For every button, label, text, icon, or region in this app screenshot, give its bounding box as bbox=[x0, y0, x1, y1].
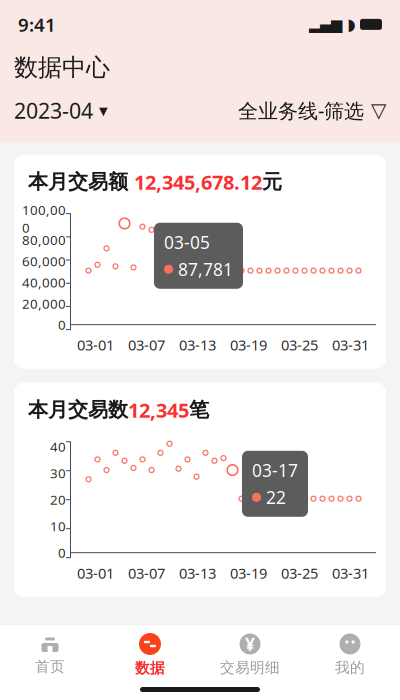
button[interactable]: 我的 bbox=[300, 625, 400, 682]
staticText: 03-31 bbox=[332, 335, 369, 355]
staticText: 笔 bbox=[189, 398, 209, 422]
staticText: 03-07 bbox=[128, 563, 165, 583]
staticText: 03-19 bbox=[230, 563, 267, 583]
staticText: 60,000 bbox=[22, 252, 66, 270]
staticText: 30 bbox=[50, 464, 66, 482]
staticText: 03-17 bbox=[252, 459, 298, 482]
staticText: ▾ bbox=[99, 101, 108, 120]
staticText: ¥ bbox=[245, 632, 255, 655]
staticText: 10 bbox=[50, 517, 66, 535]
staticText: 0 bbox=[58, 316, 66, 333]
staticText: 03-13 bbox=[179, 563, 216, 583]
staticText: 40,000 bbox=[22, 273, 66, 291]
staticText: 03-13 bbox=[179, 335, 216, 355]
staticText: 20 bbox=[50, 491, 66, 508]
staticText: 87,781 bbox=[178, 258, 233, 281]
button[interactable]: ¥ bbox=[200, 625, 300, 682]
button[interactable]: 2023-04 bbox=[14, 92, 108, 129]
staticText: 03-01 bbox=[77, 563, 114, 583]
staticText: ▽ bbox=[371, 99, 386, 122]
staticText: 100,000 bbox=[22, 201, 66, 236]
staticText: 03-25 bbox=[281, 335, 318, 355]
staticText: 数据 bbox=[135, 659, 165, 677]
button[interactable]: 数据 bbox=[100, 625, 200, 683]
staticText: 我的 bbox=[335, 658, 365, 676]
staticText: 全业务线-筛选 bbox=[238, 97, 364, 124]
staticText: 40 bbox=[50, 438, 66, 455]
staticText: 元 bbox=[262, 170, 282, 194]
button[interactable]: 全业务线-筛选 bbox=[238, 93, 386, 128]
staticText: 80,000 bbox=[22, 231, 66, 249]
staticText: 20,000 bbox=[22, 295, 66, 312]
staticText: 03-19 bbox=[230, 335, 267, 355]
staticText: 9:41 bbox=[18, 12, 56, 37]
staticText: 03-01 bbox=[77, 335, 114, 355]
staticText: 数据中心 bbox=[14, 53, 110, 82]
staticText: 12,345 bbox=[128, 397, 189, 423]
staticText: 03-07 bbox=[128, 335, 165, 355]
staticText: 22 bbox=[266, 486, 286, 509]
staticText: 2023-04 bbox=[14, 96, 93, 125]
staticText: 首页 bbox=[35, 657, 65, 675]
staticText: 03-25 bbox=[281, 563, 318, 583]
staticText: 12,345,678.12 bbox=[134, 169, 262, 195]
staticText: ◗ bbox=[347, 15, 355, 33]
staticText: 0 bbox=[58, 544, 66, 561]
staticText: 本月交易数 bbox=[28, 398, 128, 422]
staticText: 03-31 bbox=[332, 563, 369, 583]
button[interactable]: 首页 bbox=[0, 626, 100, 681]
staticText: 03-05 bbox=[164, 231, 210, 254]
staticText: 交易明细 bbox=[220, 658, 280, 676]
staticText: ▂▄▆ bbox=[309, 16, 342, 33]
staticText: 本月交易额 bbox=[28, 170, 134, 194]
